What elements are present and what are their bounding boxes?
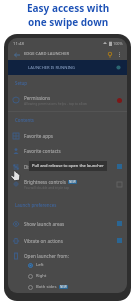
staticText: Discover (24, 164, 117, 170)
staticText: Brightness controls (24, 179, 66, 185)
button[interactable]: Both sides (8, 282, 127, 292)
button[interactable]: Key (104, 49, 115, 60)
button[interactable]: Show launch areas (8, 217, 127, 230)
staticText: Left (36, 262, 44, 268)
staticText: EDGE CARD LAUNCHER (24, 51, 70, 57)
button[interactable]: Right (8, 271, 127, 281)
button[interactable]: More options (115, 50, 124, 59)
button[interactable]: Permissions (8, 90, 127, 110)
staticText: Easy access with (27, 1, 110, 15)
button[interactable]: Open launcher from: (8, 249, 127, 262)
button[interactable]: Contents (8, 116, 127, 124)
staticText: LAUNCHER IS RUNNING (28, 65, 75, 71)
staticText: Allowing permissions helps - tap to allo… (24, 101, 87, 105)
staticText: Favorite contacts (24, 148, 122, 154)
staticText: Show launch areas (24, 221, 117, 227)
staticText: You will double and triple tap (24, 185, 70, 189)
staticText: NEW (60, 285, 67, 289)
button[interactable]: Brightness controls (8, 174, 127, 194)
button[interactable]: Launch preferences (8, 201, 127, 209)
staticText: one swipe down (28, 15, 109, 29)
button[interactable]: LAUNCHER IS RUNNING (8, 60, 127, 75)
button[interactable]: Discover (8, 160, 127, 173)
staticText: Open launcher from: (24, 253, 122, 259)
staticText: Permissions (24, 95, 51, 101)
staticText: 100% (113, 41, 123, 46)
staticText: NEW (69, 180, 76, 184)
staticText: Both sides (36, 284, 57, 290)
button[interactable]: Left (8, 260, 127, 270)
button[interactable]: Setup (8, 79, 127, 87)
staticText: Setup (15, 80, 28, 86)
button[interactable]: Favorite contacts (8, 144, 127, 157)
button[interactable]: Vibrate on actions (8, 234, 127, 247)
staticText: Launch preferences (15, 202, 57, 208)
staticText: 11:48 (13, 40, 24, 46)
button[interactable]: Favorite apps (8, 129, 127, 142)
staticText: Pull and release to open the launcher (32, 163, 104, 169)
staticText: Right (36, 273, 47, 279)
staticText: Contents (15, 117, 34, 123)
button[interactable]: Back (11, 49, 22, 60)
staticText: Favorite apps (24, 133, 122, 139)
staticText: Vibrate on actions (24, 238, 117, 244)
